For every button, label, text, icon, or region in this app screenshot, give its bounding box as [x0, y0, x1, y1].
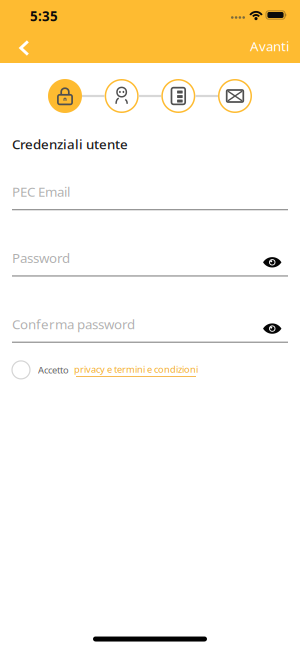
- button[interactable]: Indietro: [6, 29, 40, 63]
- button[interactable]: Mostra password: [262, 248, 288, 268]
- staticText: PEC Email: [12, 183, 70, 200]
- button[interactable]: Conferma email: [218, 79, 252, 113]
- button[interactable]: Credenziali: [48, 79, 82, 113]
- staticText: Accetto: [38, 364, 69, 376]
- staticText: Credenziali utente: [12, 135, 128, 153]
- button[interactable]: Mostra password: [262, 314, 288, 334]
- staticText: privacy e termini e condizioni: [74, 363, 198, 375]
- button[interactable]: Accetto: [0, 358, 300, 382]
- button[interactable]: Avanti: [239, 29, 300, 63]
- staticText: Avanti: [250, 37, 289, 55]
- button[interactable]: Documenti: [161, 79, 195, 113]
- button[interactable]: Dati personali: [105, 79, 139, 113]
- staticText: 5:35: [30, 7, 58, 25]
- staticText: Conferma password: [12, 315, 135, 333]
- staticText: Password: [12, 249, 70, 267]
